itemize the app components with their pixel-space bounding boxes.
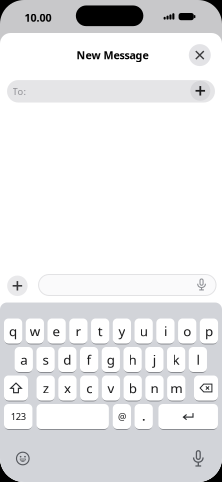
- staticText: w: [30, 322, 40, 340]
- button[interactable]: s: [36, 346, 55, 372]
- button[interactable]: Dictation: [187, 448, 209, 470]
- staticText: e: [53, 322, 61, 340]
- staticText: .: [142, 409, 145, 424]
- button[interactable]: d: [58, 346, 76, 372]
- button[interactable]: To: [7, 80, 215, 102]
- button[interactable]: Text Message: [38, 274, 216, 295]
- button[interactable]: l: [189, 346, 207, 372]
- button[interactable]: t: [91, 318, 109, 344]
- staticText: u: [140, 322, 148, 340]
- button[interactable]: .: [135, 403, 153, 429]
- button[interactable]: e: [47, 318, 66, 344]
- button[interactable]: p: [200, 318, 218, 344]
- staticText: i: [164, 322, 167, 340]
- button[interactable]: r: [69, 318, 87, 344]
- button[interactable]: Shift: [4, 375, 28, 401]
- button[interactable]: c: [80, 375, 98, 401]
- button[interactable]: z: [37, 375, 55, 401]
- staticText: r: [75, 322, 81, 340]
- staticText: To:: [12, 85, 26, 97]
- staticText: y: [118, 322, 125, 340]
- button[interactable]: Return: [158, 403, 218, 429]
- staticText: t: [98, 322, 103, 340]
- staticText: b: [129, 379, 137, 397]
- button[interactable]: x: [58, 375, 76, 401]
- staticText: c: [86, 379, 92, 397]
- staticText: n: [150, 379, 158, 397]
- staticText: f: [87, 351, 92, 368]
- button[interactable]: m: [167, 375, 185, 401]
- button[interactable]: f: [80, 346, 98, 372]
- staticText: s: [43, 351, 49, 368]
- button[interactable]: Add Contact: [190, 81, 210, 101]
- button[interactable]: q: [4, 318, 22, 344]
- staticText: z: [43, 379, 49, 397]
- button[interactable]: a: [15, 346, 33, 372]
- staticText: q: [9, 322, 17, 340]
- button[interactable]: b: [124, 375, 142, 401]
- button[interactable]: Emoji: [12, 447, 34, 469]
- button[interactable]: v: [102, 375, 120, 401]
- staticText: o: [183, 322, 191, 340]
- button[interactable]: u: [135, 318, 153, 344]
- staticText: x: [64, 379, 71, 397]
- button[interactable]: @: [113, 403, 131, 429]
- staticText: h: [129, 351, 137, 368]
- staticText: m: [170, 379, 182, 397]
- button[interactable]: k: [167, 346, 185, 372]
- staticText: k: [173, 351, 180, 368]
- staticText: New Message: [76, 48, 148, 62]
- staticText: j: [153, 351, 156, 368]
- staticText: l: [196, 351, 199, 368]
- button[interactable]: n: [145, 375, 164, 401]
- button[interactable]: j: [145, 346, 163, 372]
- button[interactable]: y: [113, 318, 131, 344]
- button[interactable]: h: [123, 346, 142, 372]
- button[interactable]: Delete: [194, 375, 218, 401]
- button[interactable]: i: [156, 318, 174, 344]
- staticText: d: [63, 351, 71, 368]
- staticText: 10.00: [24, 10, 51, 25]
- staticText: @: [118, 410, 126, 423]
- staticText: a: [20, 351, 27, 368]
- staticText: 123: [11, 410, 26, 423]
- button[interactable]: Close: [189, 44, 211, 66]
- staticText: v: [107, 379, 114, 397]
- button[interactable]: Apps: [7, 276, 28, 296]
- staticText: g: [107, 351, 115, 368]
- button[interactable]: Numbers: [4, 403, 32, 429]
- button[interactable]: Space: [37, 403, 109, 429]
- button[interactable]: g: [102, 346, 120, 372]
- staticText: p: [205, 322, 213, 340]
- button[interactable]: w: [26, 318, 44, 344]
- button[interactable]: o: [178, 318, 196, 344]
